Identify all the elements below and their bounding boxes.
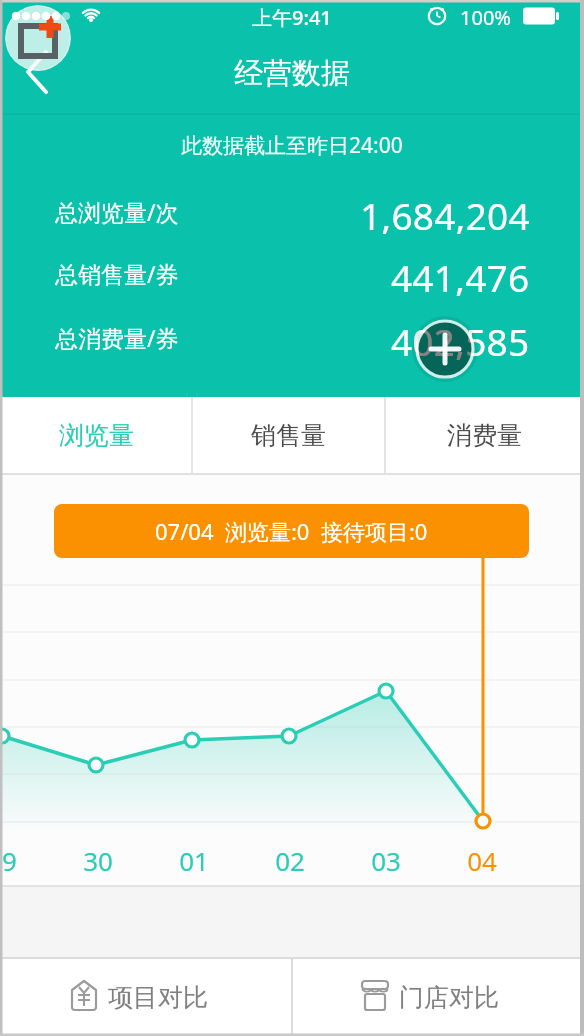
staticText: 402,585 (391, 316, 530, 360)
staticText: 上午9:41 (252, 4, 332, 30)
staticText: 30 (83, 843, 113, 873)
staticText: 04 (467, 843, 497, 873)
staticText: 29 (0, 843, 17, 873)
staticText: 项目对比 (108, 982, 208, 1013)
staticText: 总浏览量/次 (55, 196, 179, 226)
staticText: 消费量 (447, 420, 522, 451)
staticText: 门店对比 (399, 982, 499, 1013)
button[interactable]: 销售量 (192, 397, 385, 474)
staticText: 441,476 (391, 252, 530, 296)
staticText: 此数据截止至昨日24:00 (181, 131, 403, 159)
button[interactable]: 项目对比 (0, 959, 291, 1036)
staticText: 总销售量/券 (55, 258, 179, 288)
staticText: 销售量 (251, 420, 326, 451)
button[interactable] (8, 42, 72, 102)
button[interactable]: 消费量 (385, 397, 584, 474)
button[interactable]: 门店对比 (293, 959, 584, 1036)
staticText: 01 (179, 843, 209, 873)
button[interactable] (5, 5, 71, 71)
staticText: 100% (460, 4, 511, 30)
button[interactable] (411, 315, 479, 383)
button[interactable]: 07/04 浏览量:0 接待项目:0 (54, 504, 529, 558)
staticText: 浏览量 (59, 420, 134, 451)
button[interactable]: 浏览量 (0, 397, 192, 474)
staticText: 1,684,204 (360, 190, 530, 234)
staticText: 经营数据 (234, 55, 350, 91)
staticText: 总消费量/券 (55, 322, 179, 352)
staticText: 02 (275, 843, 305, 873)
staticText: 07/04 浏览量:0 接待项目:0 (155, 516, 428, 546)
staticText: 03 (371, 843, 401, 873)
